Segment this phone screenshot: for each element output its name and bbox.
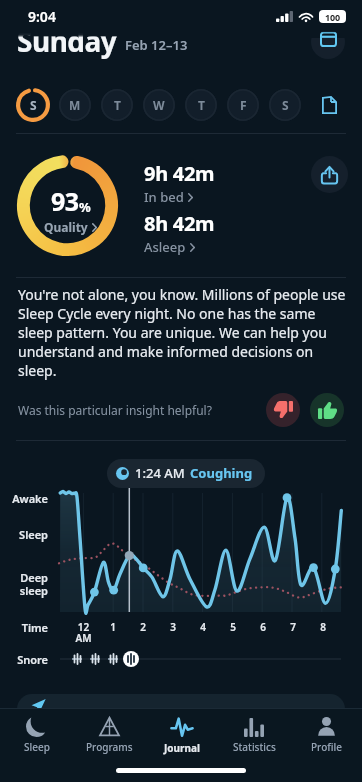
staticText: Quality [44,219,88,235]
staticText: 3 [163,620,183,634]
button[interactable]: S [266,86,304,124]
staticText: Statistics [233,740,276,754]
staticText: T [198,97,205,113]
staticText: Programs [86,740,133,754]
staticText: T [114,97,121,113]
button[interactable]: 1:24 AM [107,459,265,488]
staticText: 12 AM [73,620,94,645]
button[interactable]: 93 [17,155,118,256]
button[interactable]: Calendar [311,14,345,59]
staticText: Coughing [190,464,253,482]
button[interactable]: Sleep aid card [17,694,345,710]
button[interactable]: T [182,86,220,124]
staticText: Sunday [17,22,117,60]
button[interactable]: Profile [290,709,362,761]
button[interactable]: W [140,86,178,124]
button[interactable]: Journal [146,709,218,761]
staticText: S [30,97,37,113]
button[interactable]: F [224,86,262,124]
staticText: Was this particular insight helpful? [18,402,212,418]
button[interactable]: Sleep [0,709,73,761]
staticText: Sleep [0,527,48,542]
button[interactable]: Snore timeline [60,648,341,670]
staticText: You're not alone, you know. Millions of … [18,285,352,380]
staticText: Asleep [144,238,186,256]
staticText: 93 [51,184,79,218]
button[interactable]: Share [311,156,348,193]
button[interactable]: Programs [73,709,146,761]
staticText: 8 [313,620,333,634]
staticText: 9:04 [28,7,56,26]
staticText: Journal [164,741,200,755]
button[interactable]: Notes [309,85,349,125]
staticText: Awake [0,491,48,506]
staticText: In bed [144,188,184,206]
button[interactable]: Not helpful [266,393,300,427]
staticText: Sleep [24,740,50,754]
staticText: 1:24 AM [135,464,185,482]
staticText: F [240,97,247,113]
staticText: 1 [103,620,123,634]
staticText: Time [0,620,48,635]
staticText: Deep sleep [0,570,48,598]
button[interactable]: M [56,86,94,124]
staticText: 5 [223,620,243,634]
staticText: 9h 42m [144,160,215,187]
staticText: 2 [133,620,153,634]
staticText: % [79,198,91,216]
staticText: Snore [0,652,48,667]
staticText: S [282,97,289,113]
button[interactable]: Helpful [310,393,344,427]
staticText: W [153,97,165,113]
button[interactable]: S [14,86,52,124]
button[interactable]: Statistics [218,709,290,761]
staticText: Feb 12–13 [125,36,188,54]
staticText: Profile [311,740,342,754]
staticText: M [69,97,81,113]
staticText: 8h 42m [144,210,215,237]
staticText: 7 [283,620,303,634]
staticText: 4 [193,620,213,634]
button[interactable]: T [98,86,136,124]
staticText: 6 [253,620,273,634]
staticText: 100 [325,11,340,23]
